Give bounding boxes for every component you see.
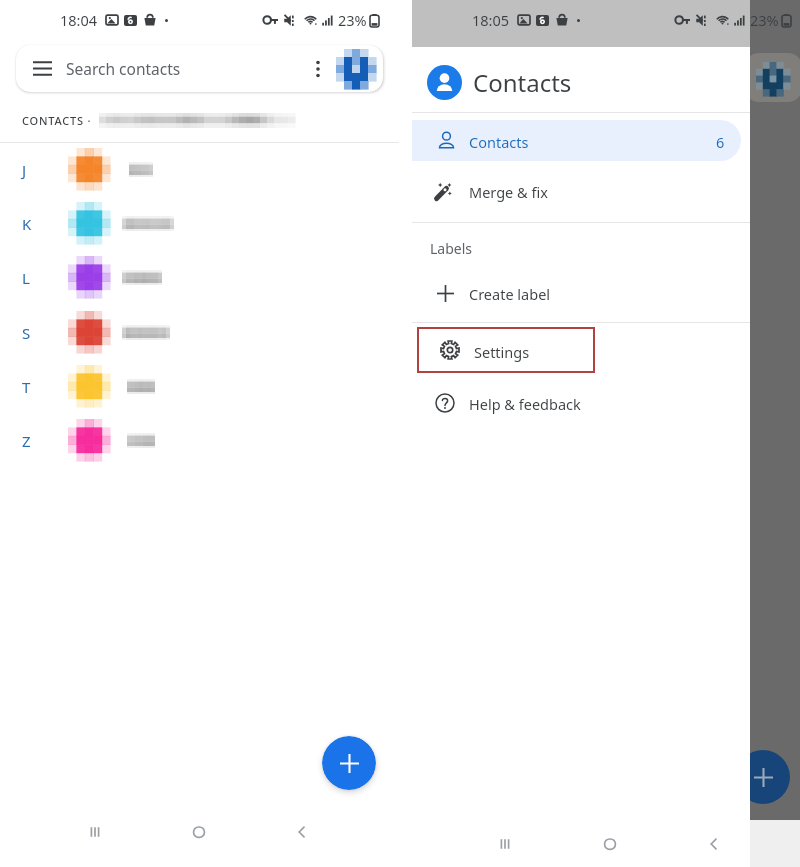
staticText: 23% bbox=[750, 10, 779, 30]
button[interactable]: Help & feedback bbox=[412, 379, 750, 427]
staticText: Z bbox=[22, 431, 31, 451]
button[interactable]: Create label bbox=[412, 269, 750, 317]
button[interactable]: Back bbox=[692, 822, 736, 866]
button[interactable]: Recent apps bbox=[483, 822, 527, 866]
staticText: Help & feedback bbox=[469, 394, 581, 414]
staticText: Create label bbox=[469, 284, 551, 304]
button[interactable] bbox=[756, 62, 790, 96]
button[interactable]: S bbox=[0, 305, 399, 359]
button[interactable]: Merge & fix bbox=[412, 167, 750, 215]
button[interactable]: Create contact bbox=[322, 736, 376, 790]
button[interactable]: T bbox=[0, 359, 399, 413]
staticText: 6 bbox=[716, 132, 725, 152]
staticText: T bbox=[22, 377, 31, 397]
button[interactable]: Open navigation drawer bbox=[16, 45, 383, 92]
staticText: CONTACTS · bbox=[22, 113, 92, 128]
staticText: Contacts bbox=[469, 132, 529, 152]
button[interactable]: J bbox=[0, 142, 399, 196]
staticText: Search contacts bbox=[66, 58, 181, 79]
button[interactable]: K bbox=[0, 196, 399, 250]
button[interactable]: Back bbox=[280, 810, 324, 854]
button[interactable]: Open navigation drawer bbox=[33, 59, 52, 78]
staticText: J bbox=[22, 160, 27, 180]
button[interactable]: Recent apps bbox=[73, 810, 117, 854]
button[interactable]: Home bbox=[177, 810, 221, 854]
staticText: S bbox=[22, 323, 31, 343]
staticText: Labels bbox=[430, 239, 473, 258]
button[interactable]: More options bbox=[309, 60, 327, 78]
button[interactable]: Settings bbox=[417, 327, 595, 373]
staticText: Contacts bbox=[473, 66, 572, 99]
staticText: K bbox=[22, 214, 32, 234]
button[interactable]: Create contact bbox=[736, 750, 790, 804]
staticText: Settings bbox=[474, 342, 530, 362]
button[interactable]: L bbox=[0, 250, 399, 304]
button[interactable]: Z bbox=[0, 413, 399, 467]
staticText: Merge & fix bbox=[469, 182, 548, 202]
staticText: 18:04 bbox=[60, 10, 98, 30]
button[interactable]: Home bbox=[588, 822, 632, 866]
button[interactable] bbox=[336, 49, 376, 89]
staticText: L bbox=[22, 268, 30, 288]
staticText: 23% bbox=[338, 10, 367, 30]
staticText: 18:05 bbox=[472, 10, 510, 30]
button[interactable]: Contacts bbox=[412, 120, 741, 161]
